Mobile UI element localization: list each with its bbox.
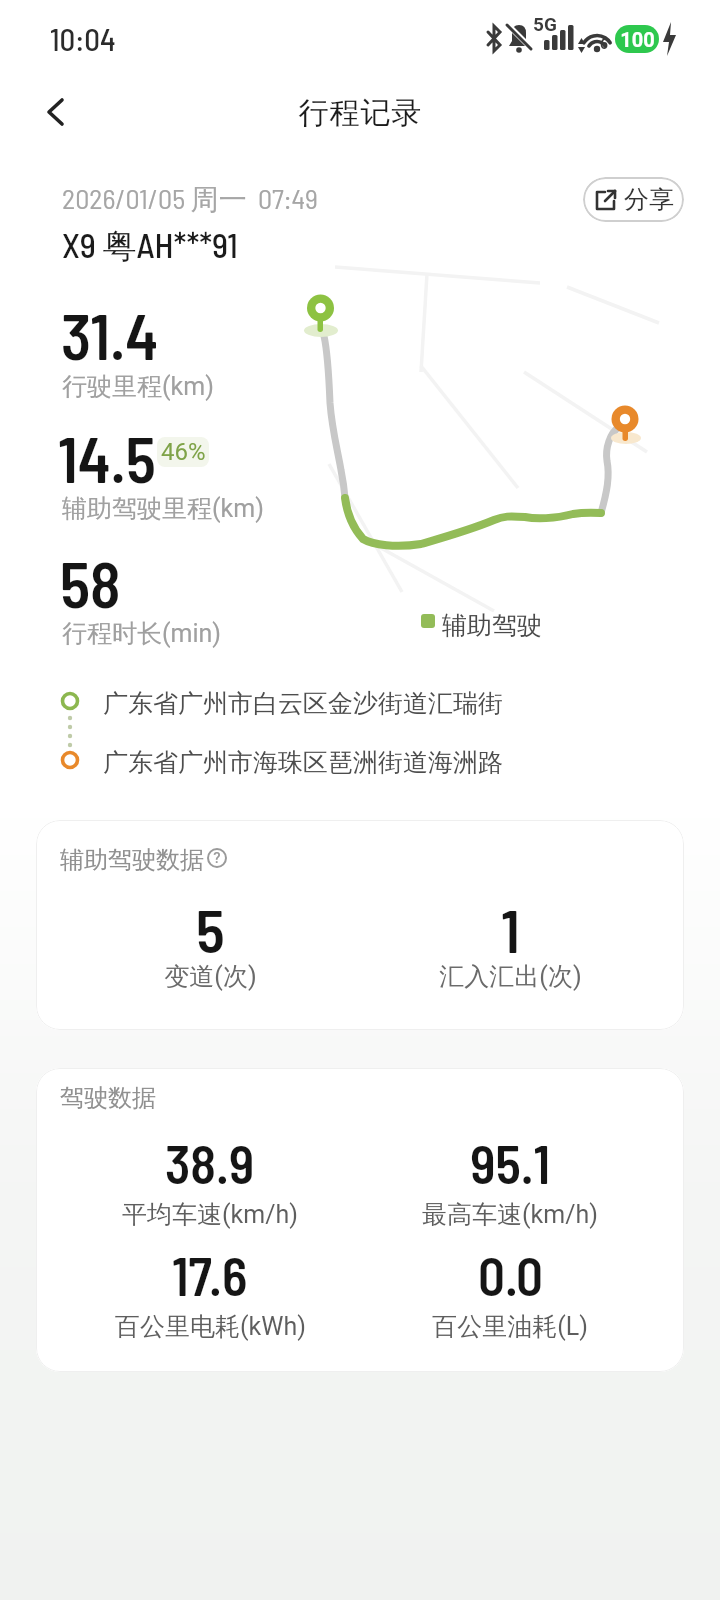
- staticText: 6: [600, 36, 609, 52]
- staticText: 分享: [624, 184, 674, 215]
- staticText: 广东省广州市白云区金沙街道汇瑞街: [103, 688, 503, 719]
- staticText: 平均车速(km/h): [122, 1199, 298, 1230]
- staticText: 95.1: [470, 1131, 551, 1189]
- staticText: X9 粤AH***91: [62, 224, 238, 268]
- staticText: 辅助驾驶: [442, 610, 542, 641]
- staticText: 2026/01/05 周一 07:49: [62, 181, 318, 217]
- staticText: 58: [60, 545, 121, 621]
- staticText: 10:04: [50, 20, 116, 57]
- staticText: 行程记录: [298, 94, 422, 132]
- staticText: 变道(次): [164, 961, 257, 992]
- staticText: 31.4: [61, 297, 159, 373]
- staticText: 5: [196, 893, 225, 955]
- staticText: 广东省广州市海珠区琶洲街道海洲路: [103, 747, 503, 778]
- staticText: ?: [213, 849, 221, 867]
- staticText: 100: [620, 28, 655, 51]
- staticText: 5G: [533, 13, 557, 35]
- staticText: 百公里油耗(L): [432, 1311, 588, 1342]
- staticText: 17.6: [172, 1243, 248, 1301]
- staticText: 百公里电耗(kWh): [115, 1311, 306, 1342]
- staticText: 行驶里程(km): [62, 371, 214, 402]
- staticText: 38.9: [165, 1131, 255, 1189]
- staticText: 汇入汇出(次): [439, 961, 582, 992]
- staticText: 1: [501, 893, 520, 955]
- staticText: 最高车速(km/h): [422, 1199, 598, 1230]
- staticText: 行程时长(min): [62, 618, 222, 649]
- staticText: 14.5: [58, 420, 156, 496]
- staticText: 46%: [161, 438, 206, 466]
- staticText: 辅助驾驶里程(km): [62, 493, 264, 524]
- button[interactable]: [30, 86, 82, 138]
- staticText: 驾驶数据: [60, 1083, 156, 1113]
- staticText: 0.0: [478, 1243, 543, 1301]
- staticText: 辅助驾驶数据: [60, 845, 204, 875]
- button[interactable]: 分享: [583, 177, 684, 222]
